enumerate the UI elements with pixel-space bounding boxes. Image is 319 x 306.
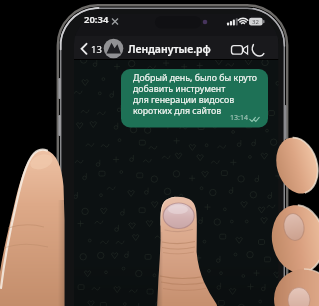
button[interactable] (121, 69, 268, 128)
staticText: 32 (252, 18, 259, 26)
button[interactable]: Ленданутые.рф (128, 42, 211, 56)
button[interactable] (228, 40, 250, 58)
staticText: 13 (91, 43, 102, 56)
staticText: 13:14 (230, 113, 248, 123)
staticText: 20:34 (84, 13, 109, 26)
button[interactable] (250, 40, 267, 58)
staticText: Добрый день, было бы круто добавить инст… (133, 72, 257, 117)
button[interactable] (79, 39, 105, 59)
